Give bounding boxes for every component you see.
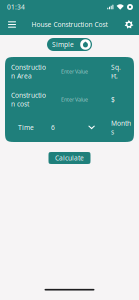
staticText: 6 [51, 123, 55, 132]
staticText: Month s [111, 119, 131, 136]
staticText: Enter Value [61, 96, 88, 103]
staticText: Enter Value [61, 68, 88, 75]
button[interactable]: Simple [47, 38, 92, 51]
button[interactable]: Menu [3, 14, 21, 35]
staticText: Constructio n cost [11, 91, 46, 108]
staticText: Sq. Ft. [111, 63, 121, 80]
button[interactable]: Enter Value [46, 64, 95, 78]
staticText: Calculate [55, 154, 84, 162]
button[interactable]: 6 [46, 120, 95, 134]
button[interactable]: Settings [120, 14, 138, 35]
staticText: Simple [52, 40, 74, 49]
staticText: $ [111, 95, 115, 104]
staticText: 01:34 [7, 3, 25, 11]
button[interactable]: Enter Value [46, 92, 95, 106]
button[interactable]: Calculate [48, 152, 90, 164]
staticText: House Construction Cost [31, 20, 107, 29]
staticText: Time [18, 123, 34, 132]
staticText: Constructio n Area [11, 63, 46, 80]
